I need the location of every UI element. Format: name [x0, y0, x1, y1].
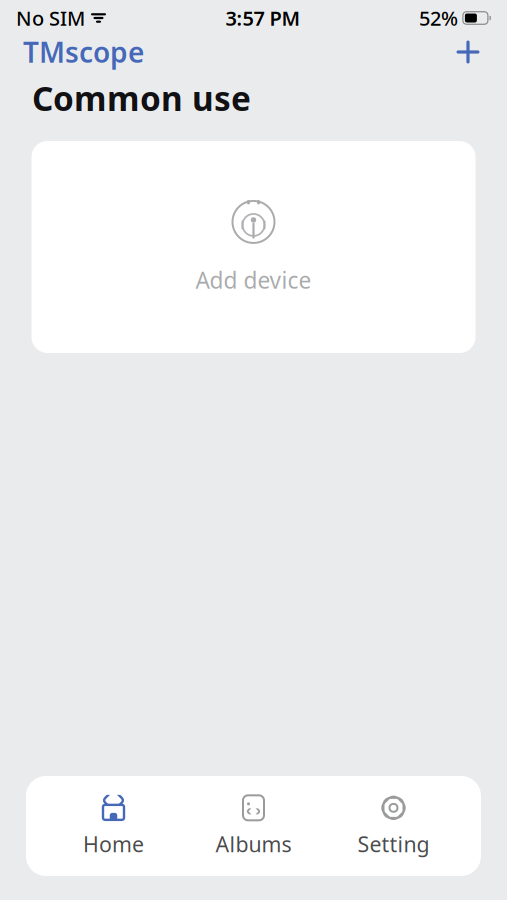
- staticText: 52%: [419, 5, 458, 31]
- button[interactable]: Home: [43, 776, 183, 876]
- button[interactable]: Setting: [323, 776, 463, 876]
- staticText: Common use: [32, 76, 251, 120]
- button[interactable]: Add device: [31, 141, 475, 353]
- staticText: TMscope: [23, 33, 144, 71]
- staticText: No SIM: [16, 5, 85, 31]
- staticText: Add device: [195, 265, 311, 295]
- button[interactable]: Add: [446, 30, 490, 74]
- button[interactable]: Albums: [183, 776, 323, 876]
- staticText: Setting: [357, 830, 429, 858]
- staticText: 3:57 PM: [225, 5, 300, 31]
- staticText: Home: [83, 830, 144, 858]
- staticText: Albums: [215, 830, 291, 858]
